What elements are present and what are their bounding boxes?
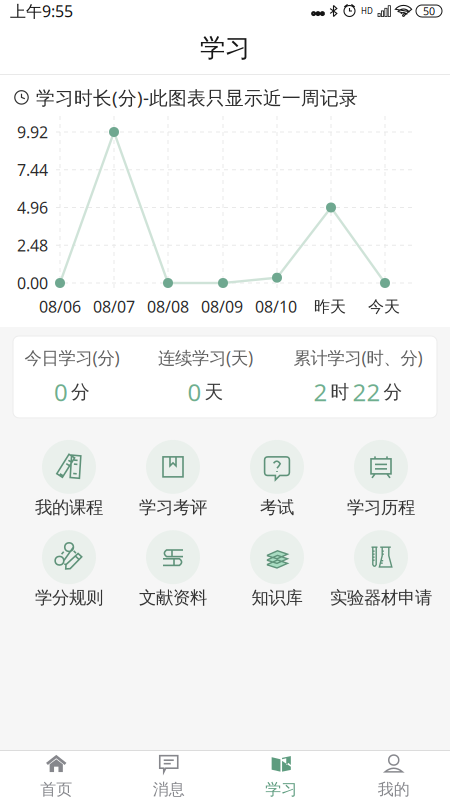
- staticText: 08/08: [147, 296, 189, 317]
- staticText: 学习历程: [347, 497, 415, 518]
- staticText: 天: [204, 380, 223, 403]
- staticText: 08/09: [201, 296, 243, 317]
- staticText: 上午9:55: [10, 0, 73, 22]
- staticText: 08/06: [39, 296, 81, 317]
- staticText: 0.00: [17, 272, 48, 294]
- button[interactable]: 文献资料: [121, 530, 225, 608]
- staticText: 08/07: [93, 296, 135, 317]
- button[interactable]: 我的: [337, 752, 450, 799]
- staticText: 0: [54, 376, 68, 408]
- staticText: HD: [361, 6, 373, 16]
- staticText: 我的课程: [35, 497, 103, 518]
- staticText: 08/10: [255, 296, 297, 317]
- staticText: 50: [423, 4, 435, 18]
- button[interactable]: 学习: [225, 752, 337, 799]
- staticText: 昨天: [314, 297, 346, 316]
- button[interactable]: 学习历程: [329, 440, 433, 518]
- button[interactable]: 考试: [225, 440, 329, 518]
- staticText: 0: [187, 376, 201, 408]
- staticText: 学习: [265, 780, 297, 799]
- staticText: 7.44: [17, 159, 48, 180]
- staticText: 首页: [40, 780, 72, 799]
- staticText: 学习考评: [139, 497, 207, 518]
- button[interactable]: 知识库: [225, 530, 329, 608]
- button[interactable]: 学分规则: [17, 530, 121, 608]
- staticText: 文献资料: [139, 587, 207, 608]
- button[interactable]: 首页: [0, 752, 112, 799]
- staticText: 4.96: [17, 197, 48, 218]
- staticText: 2.48: [17, 235, 48, 256]
- staticText: 22: [352, 376, 380, 408]
- staticText: 学分规则: [35, 587, 103, 608]
- staticText: 累计学习(时、分): [293, 346, 422, 369]
- button[interactable]: 实验器材申请: [329, 530, 433, 608]
- staticText: 学习时长(分)-此图表只显示近一周记录: [36, 85, 358, 110]
- staticText: 考试: [260, 497, 294, 518]
- staticText: 连续学习(天): [158, 346, 253, 369]
- staticText: 今天: [368, 297, 400, 316]
- staticText: 知识库: [251, 587, 302, 608]
- button[interactable]: 我的课程: [17, 440, 121, 518]
- staticText: 分: [71, 380, 90, 403]
- button[interactable]: 学习考评: [121, 440, 225, 518]
- staticText: 学习: [200, 32, 250, 63]
- staticText: 实验器材申请: [330, 587, 432, 608]
- button[interactable]: 消息: [112, 752, 225, 799]
- staticText: 时: [330, 380, 349, 403]
- staticText: 我的: [378, 780, 410, 799]
- staticText: 9.92: [17, 121, 48, 143]
- staticText: 分: [383, 380, 402, 403]
- staticText: 消息: [153, 780, 185, 799]
- staticText: 今日学习(分): [24, 346, 119, 369]
- staticText: 2: [313, 376, 327, 408]
